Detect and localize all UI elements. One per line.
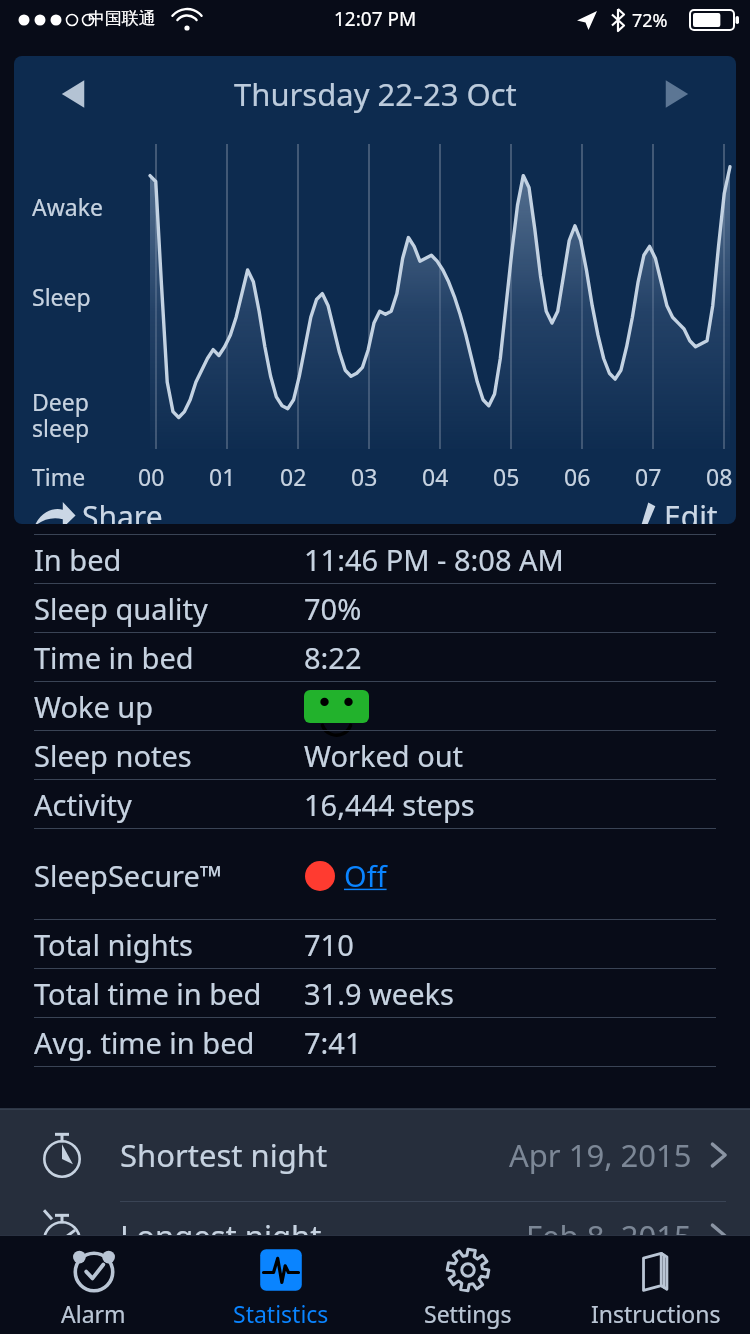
button[interactable]: Time in bed bbox=[34, 633, 716, 681]
button[interactable]: Previous day bbox=[14, 56, 134, 132]
staticText: Total time in bed bbox=[34, 974, 262, 1013]
staticText: Woke up bbox=[34, 687, 154, 726]
staticText: 05 bbox=[493, 461, 520, 492]
staticText: Longest night bbox=[120, 1215, 322, 1257]
staticText: 08 bbox=[706, 461, 733, 492]
button[interactable]: Shortest night bbox=[0, 1109, 750, 1201]
staticText: Share bbox=[82, 496, 163, 524]
staticText: 710 bbox=[304, 925, 354, 964]
button[interactable]: Longest night bbox=[0, 1202, 750, 1269]
staticText: Alarm bbox=[61, 1298, 126, 1329]
staticText: Total nights bbox=[34, 925, 193, 964]
staticText: Awake bbox=[32, 191, 103, 222]
staticText: 中国联通 bbox=[88, 8, 156, 29]
button[interactable]: Edit bbox=[634, 496, 718, 524]
staticText: 16,444 steps bbox=[304, 785, 475, 824]
staticText: Sleep bbox=[32, 281, 91, 312]
staticText: 72% bbox=[632, 8, 668, 33]
button[interactable]: Sleep quality bbox=[34, 584, 716, 632]
button[interactable]: Sleep notes bbox=[34, 731, 716, 779]
button[interactable]: Instructions bbox=[562, 1236, 750, 1329]
staticText: Settings bbox=[424, 1298, 512, 1329]
button[interactable]: Share bbox=[32, 496, 175, 524]
staticText: Statistics bbox=[233, 1298, 329, 1329]
staticText: Worked out bbox=[304, 736, 464, 775]
staticText: 31.9 weeks bbox=[304, 974, 454, 1013]
staticText: 03 bbox=[351, 461, 378, 492]
button[interactable]: Next day bbox=[616, 56, 736, 132]
staticText: Thursday 22-23 Oct bbox=[234, 73, 517, 115]
button[interactable]: Woke up bbox=[34, 682, 716, 730]
staticText: Sleep quality bbox=[34, 589, 208, 628]
staticText: 12:07 PM bbox=[334, 6, 417, 32]
staticText: sleep bbox=[32, 412, 90, 443]
staticText: Deep bbox=[32, 386, 89, 417]
staticText: Activity bbox=[34, 785, 132, 824]
staticText: In bed bbox=[34, 540, 122, 579]
staticText: 06 bbox=[564, 461, 591, 492]
staticText: Avg. time in bed bbox=[34, 1023, 255, 1062]
staticText: Instructions bbox=[591, 1298, 721, 1329]
staticText: Time in bed bbox=[34, 638, 194, 677]
button[interactable]: Avg. time in bed bbox=[34, 1018, 716, 1066]
staticText: 07 bbox=[635, 461, 662, 492]
staticText: SleepSecure™ bbox=[34, 856, 223, 895]
button[interactable]: Off bbox=[344, 856, 387, 895]
staticText: 11:46 PM - 8:08 AM bbox=[304, 540, 564, 579]
button[interactable]: Total time in bed bbox=[34, 969, 716, 1017]
button[interactable]: Activity bbox=[34, 780, 716, 828]
staticText: Sleep notes bbox=[34, 736, 192, 775]
staticText: Apr 19, 2015 bbox=[509, 1134, 692, 1176]
button[interactable]: In bed bbox=[34, 535, 716, 583]
staticText: Time bbox=[32, 461, 86, 492]
staticText: 8:22 bbox=[304, 638, 362, 677]
staticText: 00 bbox=[138, 461, 165, 492]
staticText: 70% bbox=[304, 589, 362, 628]
staticText: 7:41 bbox=[304, 1023, 362, 1062]
staticText: Feb 8, 2015 bbox=[526, 1215, 692, 1257]
button[interactable]: Total nights bbox=[34, 920, 716, 968]
button[interactable]: Statistics bbox=[187, 1236, 374, 1329]
staticText: 04 bbox=[422, 461, 449, 492]
staticText: Off bbox=[344, 856, 387, 895]
button[interactable]: Alarm bbox=[0, 1236, 187, 1329]
button[interactable]: Settings bbox=[374, 1236, 562, 1329]
staticText: 02 bbox=[280, 461, 307, 492]
staticText: 01 bbox=[209, 461, 236, 492]
staticText: Shortest night bbox=[120, 1134, 328, 1176]
button[interactable]: SleepSecure™ bbox=[34, 851, 716, 899]
staticText: Edit bbox=[664, 496, 718, 524]
